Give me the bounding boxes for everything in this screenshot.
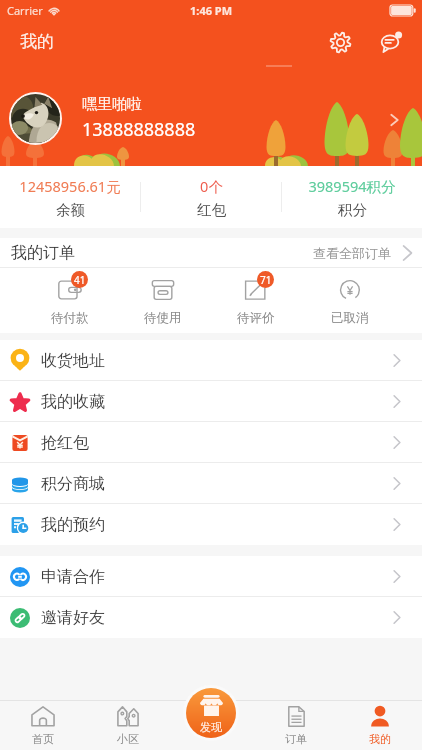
button[interactable]: Messages: [377, 27, 407, 57]
button[interactable]: 申请合作: [0, 556, 422, 597]
button[interactable]: Settings: [325, 27, 355, 57]
button[interactable]: 嘿里啪啦: [0, 87, 422, 149]
staticText: 首页: [32, 732, 54, 746]
button[interactable]: 邀请好友: [0, 597, 422, 638]
staticText: 0个: [200, 176, 223, 196]
staticText: 余额: [56, 201, 85, 219]
button[interactable]: 我的: [338, 701, 422, 750]
button[interactable]: 待使用: [116, 268, 209, 333]
button[interactable]: 71: [209, 268, 303, 333]
staticText: 邀请好友: [41, 608, 105, 628]
button[interactable]: 已取消: [303, 268, 397, 333]
button[interactable]: 我的收藏: [0, 381, 422, 422]
staticText: 申请合作: [41, 567, 105, 587]
button[interactable]: 41: [23, 268, 116, 333]
staticText: 我的预约: [41, 515, 105, 535]
staticText: 1:46 PM: [190, 3, 233, 18]
staticText: 抢红包: [41, 433, 89, 453]
staticText: 我的: [369, 732, 391, 746]
staticText: 待使用: [144, 310, 182, 326]
staticText: 71: [260, 273, 272, 287]
staticText: 我的收藏: [41, 392, 105, 412]
button[interactable]: 发现: [186, 688, 236, 738]
staticText: 我的订单: [11, 243, 75, 263]
button[interactable]: 3989594积分: [282, 166, 422, 228]
staticText: Carrier: [7, 3, 43, 18]
staticText: 已取消: [331, 310, 369, 326]
staticText: 13888888888: [82, 117, 196, 142]
staticText: 订单: [285, 732, 307, 746]
staticText: 查看全部订单: [313, 245, 391, 261]
button[interactable]: 12458956.61元: [0, 166, 140, 228]
staticText: 嘿里啪啦: [82, 95, 142, 114]
button[interactable]: 首页: [0, 701, 85, 750]
button[interactable]: 抢红包: [0, 422, 422, 463]
staticText: 12458956.61元: [19, 176, 121, 196]
staticText: 我的: [20, 31, 54, 52]
staticText: 收货地址: [41, 351, 105, 371]
staticText: 待付款: [51, 310, 89, 326]
button[interactable]: 我的订单: [0, 238, 422, 267]
staticText: 红包: [197, 201, 226, 219]
button[interactable]: 小区: [85, 701, 170, 750]
staticText: 待评价: [237, 310, 275, 326]
button[interactable]: 收货地址: [0, 340, 422, 381]
staticText: 41: [74, 273, 86, 287]
button[interactable]: 0个: [141, 166, 281, 228]
button[interactable]: 积分商城: [0, 463, 422, 504]
button[interactable]: 订单: [254, 701, 338, 750]
button[interactable]: 我的预约: [0, 504, 422, 545]
staticText: 积分: [338, 201, 367, 219]
staticText: 积分商城: [41, 474, 105, 494]
staticText: 3989594积分: [308, 176, 396, 196]
staticText: 发现: [200, 720, 222, 734]
staticText: 小区: [117, 732, 139, 746]
